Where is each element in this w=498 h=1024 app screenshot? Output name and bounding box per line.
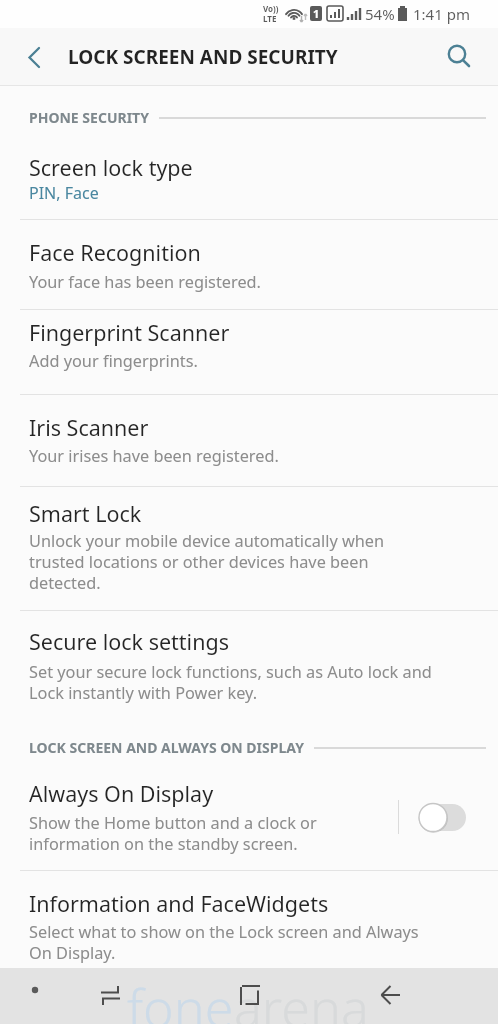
staticText: Secure lock settings xyxy=(29,627,229,656)
button[interactable] xyxy=(231,976,269,1014)
staticText: Face Recognition xyxy=(29,238,201,267)
button[interactable] xyxy=(0,486,498,610)
button[interactable] xyxy=(0,870,498,968)
button[interactable] xyxy=(438,36,480,78)
staticText: Screen lock type xyxy=(29,153,193,182)
staticText: 1 xyxy=(313,6,320,21)
staticText: Add your fingerprints. xyxy=(29,350,198,372)
staticText: Your irises have been registered. xyxy=(29,445,279,467)
staticText: 54% xyxy=(365,4,395,24)
button[interactable] xyxy=(0,764,498,870)
staticText: PHONE SECURITY xyxy=(29,108,149,127)
staticText: Set your secure lock functions, such as … xyxy=(29,661,432,704)
button[interactable] xyxy=(372,976,410,1014)
button[interactable] xyxy=(0,394,498,486)
staticText: 1:41 pm xyxy=(413,4,470,24)
staticText: Information and FaceWidgets xyxy=(29,889,329,918)
staticText: Select what to show on the Lock screen a… xyxy=(29,921,419,964)
staticText: arena xyxy=(234,971,369,1024)
button[interactable] xyxy=(14,37,54,77)
button[interactable] xyxy=(0,219,498,309)
button[interactable] xyxy=(419,804,466,831)
staticText: PIN, Face xyxy=(29,182,99,204)
staticText: Unlock your mobile device automatically … xyxy=(29,530,385,594)
staticText: fone xyxy=(127,971,234,1024)
staticText: Your face has been registered. xyxy=(29,271,261,293)
staticText: LOCK SCREEN AND SECURITY xyxy=(68,44,338,70)
staticText: Show the Home button and a clock or info… xyxy=(29,812,317,855)
staticText: Iris Scanner xyxy=(29,413,149,442)
button[interactable] xyxy=(0,309,498,394)
staticText: LOCK SCREEN AND ALWAYS ON DISPLAY xyxy=(29,738,304,757)
button[interactable] xyxy=(0,610,498,715)
staticText: Vo)) xyxy=(263,3,279,14)
staticText: Fingerprint Scanner xyxy=(29,318,230,347)
staticText: Smart Lock xyxy=(29,499,142,528)
button[interactable] xyxy=(92,976,130,1014)
staticText: LTE xyxy=(263,13,277,24)
staticText: Always On Display xyxy=(29,779,214,808)
button[interactable] xyxy=(0,119,498,219)
